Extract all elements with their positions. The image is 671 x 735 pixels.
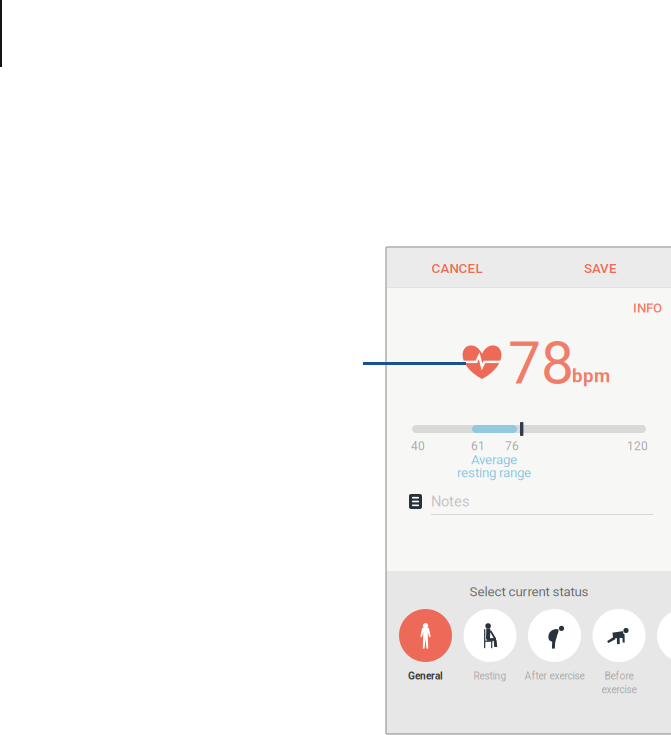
- staticText: INFO: [633, 300, 662, 316]
- button[interactable]: Before: [579, 609, 659, 701]
- button[interactable]: After exercise: [514, 609, 594, 701]
- staticText: Average: [471, 452, 517, 468]
- staticText: General: [408, 670, 443, 682]
- staticText: 40: [411, 439, 425, 453]
- button[interactable]: General: [385, 609, 465, 701]
- staticText: Select current status: [469, 584, 588, 600]
- button[interactable]: INFO: [618, 297, 662, 319]
- staticText: CANCEL: [431, 261, 482, 276]
- button[interactable]: Resting: [450, 609, 530, 701]
- staticText: resting range: [457, 465, 531, 481]
- staticText: 61: [471, 439, 485, 453]
- staticText: Before: [604, 670, 633, 682]
- staticText: bpm: [572, 365, 610, 387]
- staticText: 78: [508, 329, 574, 398]
- staticText: Notes: [431, 493, 470, 510]
- staticText: 120: [627, 439, 648, 453]
- staticText: Resting: [473, 670, 506, 682]
- button[interactable]: [643, 609, 671, 701]
- button[interactable]: Notes: [409, 493, 661, 527]
- staticText: SAVE: [584, 261, 617, 276]
- button[interactable]: SAVE: [535, 248, 666, 289]
- button[interactable]: CANCEL: [391, 248, 523, 289]
- staticText: After exercise: [524, 670, 584, 682]
- staticText: 76: [505, 439, 519, 453]
- staticText: exercise: [601, 684, 636, 696]
